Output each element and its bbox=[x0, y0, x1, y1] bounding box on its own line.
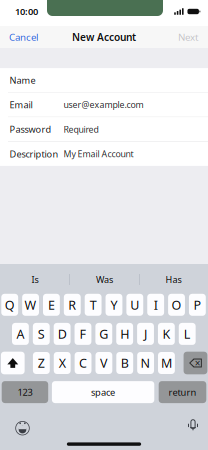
staticText: Y bbox=[110, 296, 117, 313]
staticText: Was bbox=[96, 273, 113, 286]
button[interactable]: F bbox=[75, 323, 91, 345]
staticText: G bbox=[99, 325, 108, 342]
button[interactable]: R bbox=[64, 294, 81, 316]
staticText: D bbox=[58, 325, 67, 342]
staticText: E bbox=[48, 296, 55, 313]
staticText: Cancel bbox=[9, 30, 39, 44]
button[interactable]: Shift bbox=[1, 352, 25, 374]
staticText: 123 bbox=[17, 386, 32, 398]
staticText: Has bbox=[166, 273, 182, 286]
button[interactable]: D bbox=[54, 323, 71, 345]
button[interactable]: Was bbox=[70, 265, 139, 293]
button[interactable]: Password bbox=[0, 117, 208, 141]
button[interactable]: U bbox=[126, 294, 143, 316]
staticText: W bbox=[25, 296, 37, 313]
staticText: T bbox=[90, 296, 97, 313]
button[interactable]: V bbox=[95, 352, 112, 374]
button[interactable]: space bbox=[52, 381, 154, 403]
button[interactable]: return bbox=[159, 381, 206, 403]
button[interactable]: B bbox=[116, 352, 133, 374]
staticText: space bbox=[91, 386, 115, 398]
staticText: New Account bbox=[72, 30, 136, 44]
button[interactable]: I bbox=[147, 294, 164, 316]
staticText: Email bbox=[9, 98, 32, 111]
staticText: Required bbox=[63, 123, 98, 135]
button[interactable]: 123 bbox=[2, 381, 48, 403]
staticText: J bbox=[144, 325, 147, 342]
staticText: F bbox=[79, 325, 86, 342]
staticText: Q bbox=[5, 296, 15, 313]
button[interactable]: W bbox=[22, 294, 39, 316]
staticText: L bbox=[184, 325, 191, 342]
staticText: K bbox=[162, 325, 170, 342]
button[interactable]: Q bbox=[1, 294, 18, 316]
staticText: Password bbox=[9, 123, 51, 135]
staticText: I bbox=[154, 296, 158, 313]
staticText: Is bbox=[31, 273, 38, 286]
button[interactable]: Dictate bbox=[189, 422, 197, 435]
button[interactable]: J bbox=[137, 323, 154, 345]
button[interactable]: Name bbox=[0, 68, 208, 92]
staticText: B bbox=[121, 354, 129, 372]
staticText: R bbox=[68, 296, 76, 313]
staticText: U bbox=[130, 296, 139, 313]
button[interactable]: A bbox=[12, 323, 29, 345]
staticText: 10:00 bbox=[15, 5, 38, 18]
button[interactable]: N bbox=[137, 352, 154, 374]
button[interactable]: Is bbox=[0, 265, 69, 293]
button[interactable]: Emoji bbox=[15, 421, 30, 436]
button[interactable]: P bbox=[189, 294, 206, 316]
staticText: Z bbox=[38, 354, 45, 372]
button[interactable]: Email bbox=[0, 93, 208, 117]
button[interactable]: X bbox=[54, 352, 71, 374]
staticText: × bbox=[195, 356, 201, 370]
staticText: return bbox=[168, 386, 196, 398]
button[interactable]: Has bbox=[140, 265, 208, 293]
button[interactable]: H bbox=[116, 323, 133, 345]
staticText: Next bbox=[178, 30, 199, 44]
staticText: M bbox=[161, 354, 172, 372]
staticText: O bbox=[171, 296, 181, 313]
staticText: H bbox=[120, 325, 129, 342]
button[interactable]: Description bbox=[0, 142, 208, 166]
button[interactable]: C bbox=[75, 352, 91, 374]
button[interactable]: G bbox=[95, 323, 112, 345]
staticText: V bbox=[100, 354, 108, 372]
button[interactable]: E bbox=[43, 294, 60, 316]
button[interactable]: L bbox=[179, 323, 196, 345]
button[interactable]: Y bbox=[105, 294, 122, 316]
staticText: S bbox=[38, 325, 45, 342]
button[interactable]: S bbox=[33, 323, 50, 345]
button[interactable]: Delete bbox=[184, 352, 207, 374]
staticText: X bbox=[59, 354, 66, 372]
button[interactable]: Z bbox=[33, 352, 50, 374]
button[interactable]: M bbox=[158, 352, 175, 374]
button[interactable]: Cancel bbox=[0, 26, 45, 48]
staticText: N bbox=[141, 354, 151, 372]
staticText: Description bbox=[9, 148, 58, 160]
button[interactable]: T bbox=[85, 294, 102, 316]
staticText: user@example.com bbox=[63, 99, 143, 111]
staticText: Name bbox=[9, 74, 35, 86]
staticText: My Email Account bbox=[63, 148, 133, 160]
button[interactable]: O bbox=[168, 294, 185, 316]
staticText: C bbox=[79, 354, 87, 372]
button[interactable]: K bbox=[158, 323, 175, 345]
staticText: A bbox=[16, 325, 24, 342]
button[interactable]: Next bbox=[172, 26, 208, 48]
staticText: P bbox=[193, 296, 201, 313]
